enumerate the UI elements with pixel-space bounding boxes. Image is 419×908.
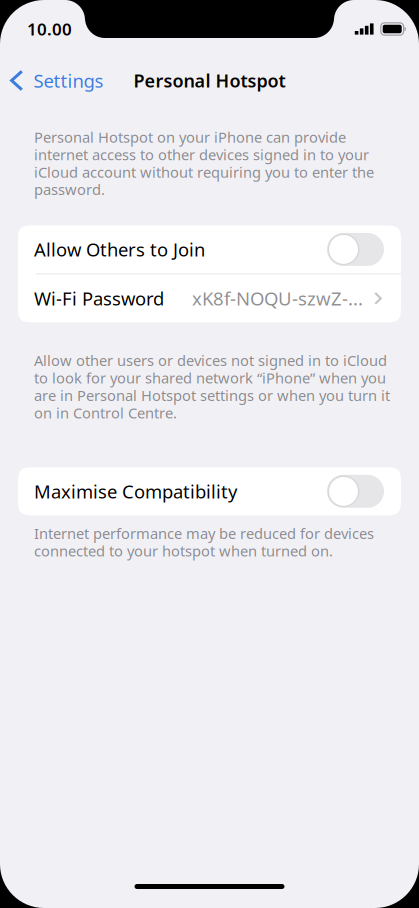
- button[interactable]: Allow Others to Join: [18, 225, 401, 273]
- staticText: Allow other users or devices not signed …: [34, 350, 390, 423]
- staticText: Personal Hotspot: [133, 68, 285, 93]
- staticText: xK8f-NOQU-szwZ-...: [192, 286, 363, 311]
- staticText: Personal Hotspot on your iPhone can prov…: [34, 127, 374, 199]
- button[interactable]: Settings: [0, 60, 112, 101]
- staticText: 10.00: [27, 17, 72, 41]
- staticText: Maximise Compatibility: [34, 479, 237, 504]
- staticText: Internet performance may be reduced for …: [34, 523, 374, 561]
- button[interactable]: Wi-Fi Password: [18, 274, 401, 322]
- button[interactable]: Maximise Compatibility: [18, 467, 401, 515]
- staticText: Settings: [34, 68, 104, 93]
- staticText: Wi-Fi Password: [34, 286, 164, 311]
- staticText: Allow Others to Join: [34, 237, 205, 262]
